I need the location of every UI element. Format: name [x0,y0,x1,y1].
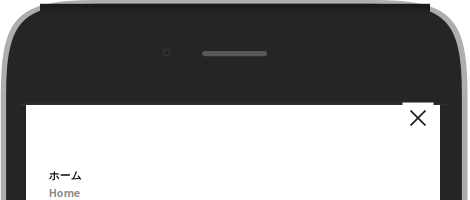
staticText: Home [49,186,80,200]
button[interactable]: Close [0,0,470,200]
staticText: ホーム [49,169,82,182]
